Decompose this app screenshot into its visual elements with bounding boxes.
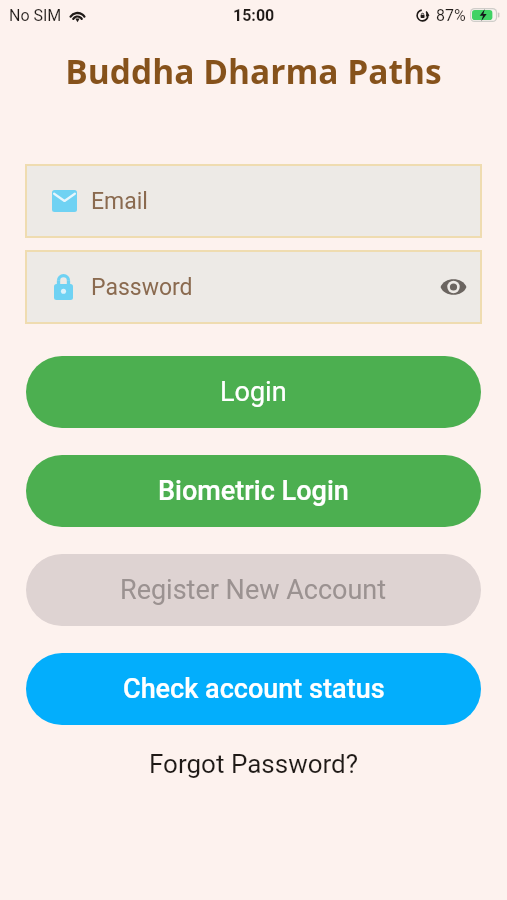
staticText: 87% xyxy=(436,6,466,25)
staticText: Forgot Password? xyxy=(149,749,359,779)
button[interactable]: Forgot Password? xyxy=(0,749,507,789)
button[interactable]: Check account status xyxy=(26,653,481,725)
button[interactable]: Login xyxy=(26,356,481,428)
button[interactable]: Register New Account xyxy=(26,554,481,626)
staticText: Password xyxy=(91,274,193,301)
staticText: No SIM xyxy=(9,6,62,25)
button[interactable]: Biometric Login xyxy=(26,455,481,527)
button[interactable]: Show password xyxy=(429,263,477,311)
staticText: Login xyxy=(220,376,287,408)
staticText: Register New Account xyxy=(120,574,387,606)
staticText: Check account status xyxy=(123,673,385,705)
button[interactable]: Password xyxy=(25,250,482,324)
staticText: Biometric Login xyxy=(158,475,349,507)
button[interactable]: Email xyxy=(25,164,482,238)
staticText: Email xyxy=(91,188,148,215)
staticText: 15:00 xyxy=(233,6,275,25)
staticText: Buddha Dharma Paths xyxy=(0,48,507,94)
